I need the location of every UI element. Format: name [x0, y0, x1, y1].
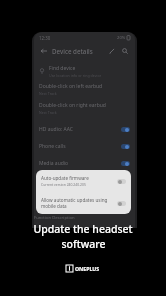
- button[interactable]: Edit: [107, 46, 117, 56]
- staticText: Media audio: [39, 160, 69, 167]
- staticText: Device details: [52, 47, 93, 55]
- button[interactable]: Double-click on right earbud: [34, 99, 135, 118]
- staticText: Function Description: [34, 215, 75, 221]
- staticText: Allow automatic updates using mobile dat…: [41, 197, 114, 209]
- button[interactable]: Auto-update firmware: [36, 170, 131, 192]
- staticText: Auto-update firmware: [41, 175, 89, 181]
- staticText: Update the headset: [33, 222, 133, 236]
- button[interactable]: Allow automatic updates using mobile dat…: [36, 192, 131, 214]
- staticText: Current version 240.240.205: [41, 182, 86, 187]
- staticText: 20%: [117, 35, 126, 41]
- button[interactable]: Back: [39, 46, 49, 56]
- staticText: Double-click on right earbud: [39, 102, 106, 109]
- staticText: ONEPLUS: [75, 265, 100, 272]
- staticText: Contact sharing: [39, 177, 77, 184]
- staticText: Find device: [49, 65, 76, 72]
- staticText: Next Track: [39, 91, 57, 96]
- staticText: 12:30: [39, 35, 51, 41]
- button[interactable]: Search: [120, 46, 130, 56]
- staticText: Use location info or ring device: [49, 73, 102, 78]
- staticText: Phone calls: [39, 143, 66, 150]
- button[interactable]: Double-click on left earbud: [34, 80, 135, 99]
- staticText: HD audio: AAC: [39, 126, 74, 133]
- button[interactable]: Contact sharing: [34, 172, 135, 189]
- button[interactable]: Find device: [34, 62, 135, 80]
- staticText: Double-click on left earbud: [39, 83, 103, 90]
- staticText: Next Track: [39, 110, 57, 115]
- button[interactable]: HD audio: AAC: [34, 121, 135, 138]
- button[interactable]: Phone calls: [34, 138, 135, 155]
- button[interactable]: Media audio: [34, 155, 135, 172]
- staticText: software: [61, 237, 106, 251]
